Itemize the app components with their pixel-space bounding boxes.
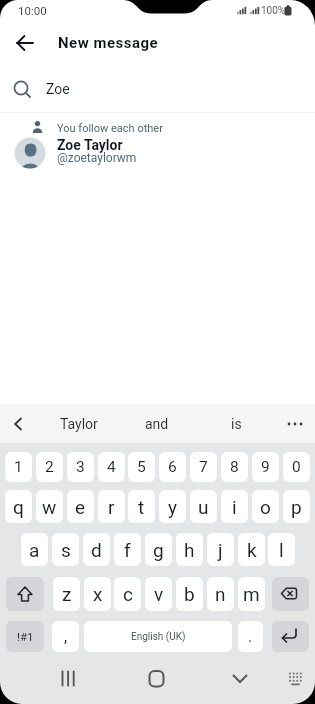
button[interactable] (0, 66, 315, 111)
staticText: d (91, 539, 102, 561)
staticText: 8 (230, 458, 239, 476)
button[interactable] (282, 664, 312, 694)
staticText: 5 (137, 458, 146, 476)
staticText: x (93, 583, 103, 605)
staticText: Taylor (60, 416, 98, 432)
staticText: z (62, 583, 72, 605)
staticText: New message (58, 34, 159, 52)
staticText: l (279, 539, 284, 561)
staticText: i (232, 496, 237, 518)
button[interactable] (2, 406, 36, 440)
button[interactable] (272, 621, 309, 652)
button[interactable] (272, 577, 309, 611)
button[interactable] (6, 577, 44, 611)
button[interactable]: e (67, 490, 94, 523)
button[interactable]: 4 (98, 452, 125, 482)
button[interactable]: 0 (283, 452, 310, 482)
staticText: Zoe (46, 81, 70, 97)
staticText: @zoetaylorwm (57, 151, 137, 165)
staticText: f (124, 539, 131, 561)
button[interactable]: o (252, 490, 279, 523)
button[interactable] (141, 664, 171, 694)
staticText: b (184, 583, 195, 605)
staticText: v (154, 583, 164, 605)
button[interactable] (225, 664, 255, 694)
staticText: m (243, 583, 260, 605)
button[interactable]: c (114, 577, 141, 611)
button[interactable]: w (36, 490, 63, 523)
button[interactable]: r (98, 490, 125, 523)
button[interactable]: x (84, 577, 111, 611)
button[interactable]: j (207, 533, 234, 566)
button[interactable]: , (52, 621, 79, 652)
button[interactable]: f (114, 533, 141, 566)
staticText: 100% (261, 5, 286, 17)
staticText: Zoe Taylor (57, 137, 123, 153)
staticText: j (218, 539, 223, 561)
staticText: n (215, 583, 226, 605)
button[interactable]: p (283, 490, 310, 523)
staticText: 1 (14, 458, 23, 476)
button[interactable]: 6 (159, 452, 186, 482)
staticText: u (198, 496, 209, 518)
button[interactable]: g (145, 533, 172, 566)
staticText: c (123, 583, 133, 605)
button[interactable] (54, 664, 84, 694)
button[interactable]: u (190, 490, 217, 523)
staticText: y (168, 496, 177, 518)
button[interactable]: 8 (221, 452, 248, 482)
staticText: k (247, 539, 257, 561)
staticText: and (145, 416, 169, 432)
button[interactable]: 9 (252, 452, 279, 482)
button[interactable]: v (145, 577, 172, 611)
button[interactable]: b (176, 577, 203, 611)
staticText: a (29, 539, 40, 561)
staticText: p (291, 496, 302, 518)
button[interactable]: !#1 (6, 621, 44, 652)
button[interactable]: h (176, 533, 203, 566)
staticText: is (231, 416, 242, 432)
staticText: 10:00 (18, 4, 47, 17)
staticText: , (64, 627, 68, 646)
staticText: t (138, 496, 145, 518)
button[interactable]: i (221, 490, 248, 523)
staticText: e (75, 496, 86, 518)
staticText: q (13, 496, 24, 518)
staticText: 7 (199, 458, 208, 476)
button[interactable] (280, 406, 314, 440)
staticText: g (153, 539, 164, 561)
staticText: 4 (107, 458, 116, 476)
staticText: You follow each other (57, 122, 163, 135)
button[interactable]: s (52, 533, 79, 566)
staticText: h (184, 539, 195, 561)
staticText: !#1 (17, 630, 34, 643)
staticText: w (42, 496, 57, 518)
button[interactable]: q (5, 490, 32, 523)
staticText: English (UK) (131, 631, 186, 643)
button[interactable]: z (53, 577, 80, 611)
button[interactable]: 7 (190, 452, 217, 482)
button[interactable]: 3 (67, 452, 94, 482)
button[interactable]: 2 (36, 452, 63, 482)
button[interactable]: 5 (128, 452, 155, 482)
staticText: 9 (261, 458, 270, 476)
button[interactable]: m (238, 577, 265, 611)
button[interactable]: . (238, 621, 263, 652)
staticText: . (248, 627, 253, 646)
button[interactable]: t (128, 490, 155, 523)
button[interactable]: k (238, 533, 265, 566)
staticText: 2 (45, 458, 54, 476)
button[interactable]: l (268, 533, 295, 566)
button[interactable] (8, 26, 42, 60)
staticText: 0 (292, 458, 301, 476)
staticText: r (108, 496, 115, 518)
button[interactable]: English (UK) (84, 621, 232, 652)
button[interactable]: 1 (5, 452, 32, 482)
staticText: s (61, 539, 71, 561)
button[interactable] (0, 134, 315, 174)
button[interactable]: d (83, 533, 110, 566)
staticText: 6 (168, 458, 177, 476)
button[interactable]: n (207, 577, 234, 611)
button[interactable]: y (159, 490, 186, 523)
button[interactable]: a (21, 533, 48, 566)
